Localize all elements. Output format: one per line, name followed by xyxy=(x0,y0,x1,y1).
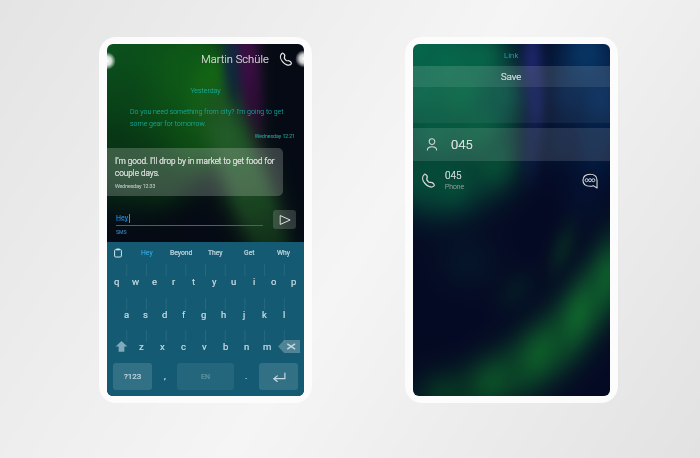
staticText: t xyxy=(192,276,196,287)
button[interactable]: Send xyxy=(273,210,296,229)
staticText: j xyxy=(243,309,246,320)
button[interactable]: , xyxy=(152,363,177,390)
button[interactable]: o xyxy=(264,264,284,298)
staticText: . xyxy=(245,371,248,382)
staticText: Save xyxy=(501,71,522,82)
staticText: l xyxy=(283,309,286,320)
staticText: z xyxy=(139,341,144,352)
button[interactable]: Hey xyxy=(130,242,164,264)
staticText: c xyxy=(181,341,186,352)
button[interactable]: Beyond xyxy=(164,242,198,264)
staticText: g xyxy=(201,309,207,320)
button[interactable]: Call xyxy=(278,52,293,67)
staticText: Link xyxy=(504,51,519,60)
button[interactable]: b xyxy=(215,330,236,362)
button[interactable]: x xyxy=(152,330,173,362)
button[interactable]: f xyxy=(174,298,194,330)
staticText: e xyxy=(152,276,158,287)
staticText: EN xyxy=(201,373,210,381)
button[interactable]: Get xyxy=(232,242,266,264)
button[interactable]: s xyxy=(136,298,155,330)
staticText: Get xyxy=(244,249,255,257)
staticText: Hey xyxy=(141,249,153,257)
staticText: Phone xyxy=(445,183,464,191)
button[interactable]: They xyxy=(198,242,232,264)
button[interactable]: Enter xyxy=(259,363,298,390)
button[interactable]: ?123 xyxy=(113,363,152,390)
staticText: Do you need something from city? I'm goi… xyxy=(130,108,284,127)
staticText: s xyxy=(143,309,148,320)
staticText: 045 xyxy=(451,137,473,152)
staticText: Hey xyxy=(116,214,128,222)
staticText: Yesterday xyxy=(107,87,304,95)
staticText: p xyxy=(291,276,297,287)
button[interactable]: . xyxy=(234,363,259,390)
button[interactable]: Link xyxy=(413,44,610,66)
button[interactable]: w xyxy=(126,264,145,298)
staticText: Beyond xyxy=(170,249,193,257)
staticText: b xyxy=(223,341,229,352)
button[interactable]: t xyxy=(184,264,204,298)
button[interactable]: i xyxy=(244,264,264,298)
staticText: f xyxy=(182,309,186,320)
staticText: a xyxy=(124,309,130,320)
button[interactable]: u xyxy=(224,264,244,298)
staticText: SMS xyxy=(116,229,127,235)
staticText: i xyxy=(253,276,256,287)
staticText: m xyxy=(263,341,272,352)
button[interactable]: y xyxy=(204,264,224,298)
staticText: I'm good. I'll drop by in market to get … xyxy=(115,156,275,178)
button[interactable]: h xyxy=(214,298,234,330)
button[interactable]: g xyxy=(194,298,214,330)
button[interactable]: k xyxy=(254,298,274,330)
button[interactable]: n xyxy=(236,330,257,362)
staticText: Wednesday 12:33 xyxy=(115,183,156,189)
staticText: h xyxy=(221,309,227,320)
button[interactable]: Martin Schüle xyxy=(107,44,304,74)
button[interactable]: e xyxy=(145,264,164,298)
button[interactable]: v xyxy=(194,330,215,362)
staticText: v xyxy=(202,341,207,352)
button[interactable]: Backspace xyxy=(278,340,300,353)
staticText: ?123 xyxy=(124,372,142,381)
staticText: q xyxy=(114,276,120,287)
staticText: x xyxy=(160,341,165,352)
button[interactable]: Clipboard xyxy=(113,248,123,258)
button[interactable]: p xyxy=(284,264,304,298)
staticText: k xyxy=(262,309,267,320)
button[interactable]: m xyxy=(257,330,278,362)
button[interactable]: EN xyxy=(177,363,234,390)
staticText: r xyxy=(172,276,176,287)
button[interactable]: d xyxy=(155,298,174,330)
button[interactable]: l xyxy=(274,298,294,330)
staticText: 045 xyxy=(445,170,462,182)
staticText: Martin Schüle xyxy=(201,53,269,66)
button[interactable]: Message xyxy=(582,173,598,189)
staticText: They xyxy=(208,249,223,257)
staticText: Wednesday 12:21 xyxy=(107,133,295,139)
button[interactable]: I'm good. I'll drop by in market to get … xyxy=(107,148,283,196)
staticText: n xyxy=(244,341,250,352)
button[interactable]: 045 xyxy=(413,128,610,161)
staticText: , xyxy=(164,371,166,382)
button[interactable]: 045 xyxy=(413,161,610,200)
button[interactable]: r xyxy=(164,264,184,298)
staticText: o xyxy=(271,276,277,287)
staticText: w xyxy=(132,276,140,287)
staticText: d xyxy=(162,309,168,320)
button[interactable]: Shift xyxy=(111,330,131,362)
button[interactable]: a xyxy=(117,298,136,330)
button[interactable]: j xyxy=(234,298,254,330)
button[interactable]: q xyxy=(107,264,126,298)
button[interactable]: Save xyxy=(413,66,610,87)
button[interactable]: z xyxy=(131,330,152,362)
button[interactable]: Why xyxy=(266,242,300,264)
staticText: y xyxy=(212,276,217,287)
button[interactable]: c xyxy=(173,330,194,362)
staticText: Why xyxy=(277,249,290,257)
staticText: u xyxy=(231,276,237,287)
